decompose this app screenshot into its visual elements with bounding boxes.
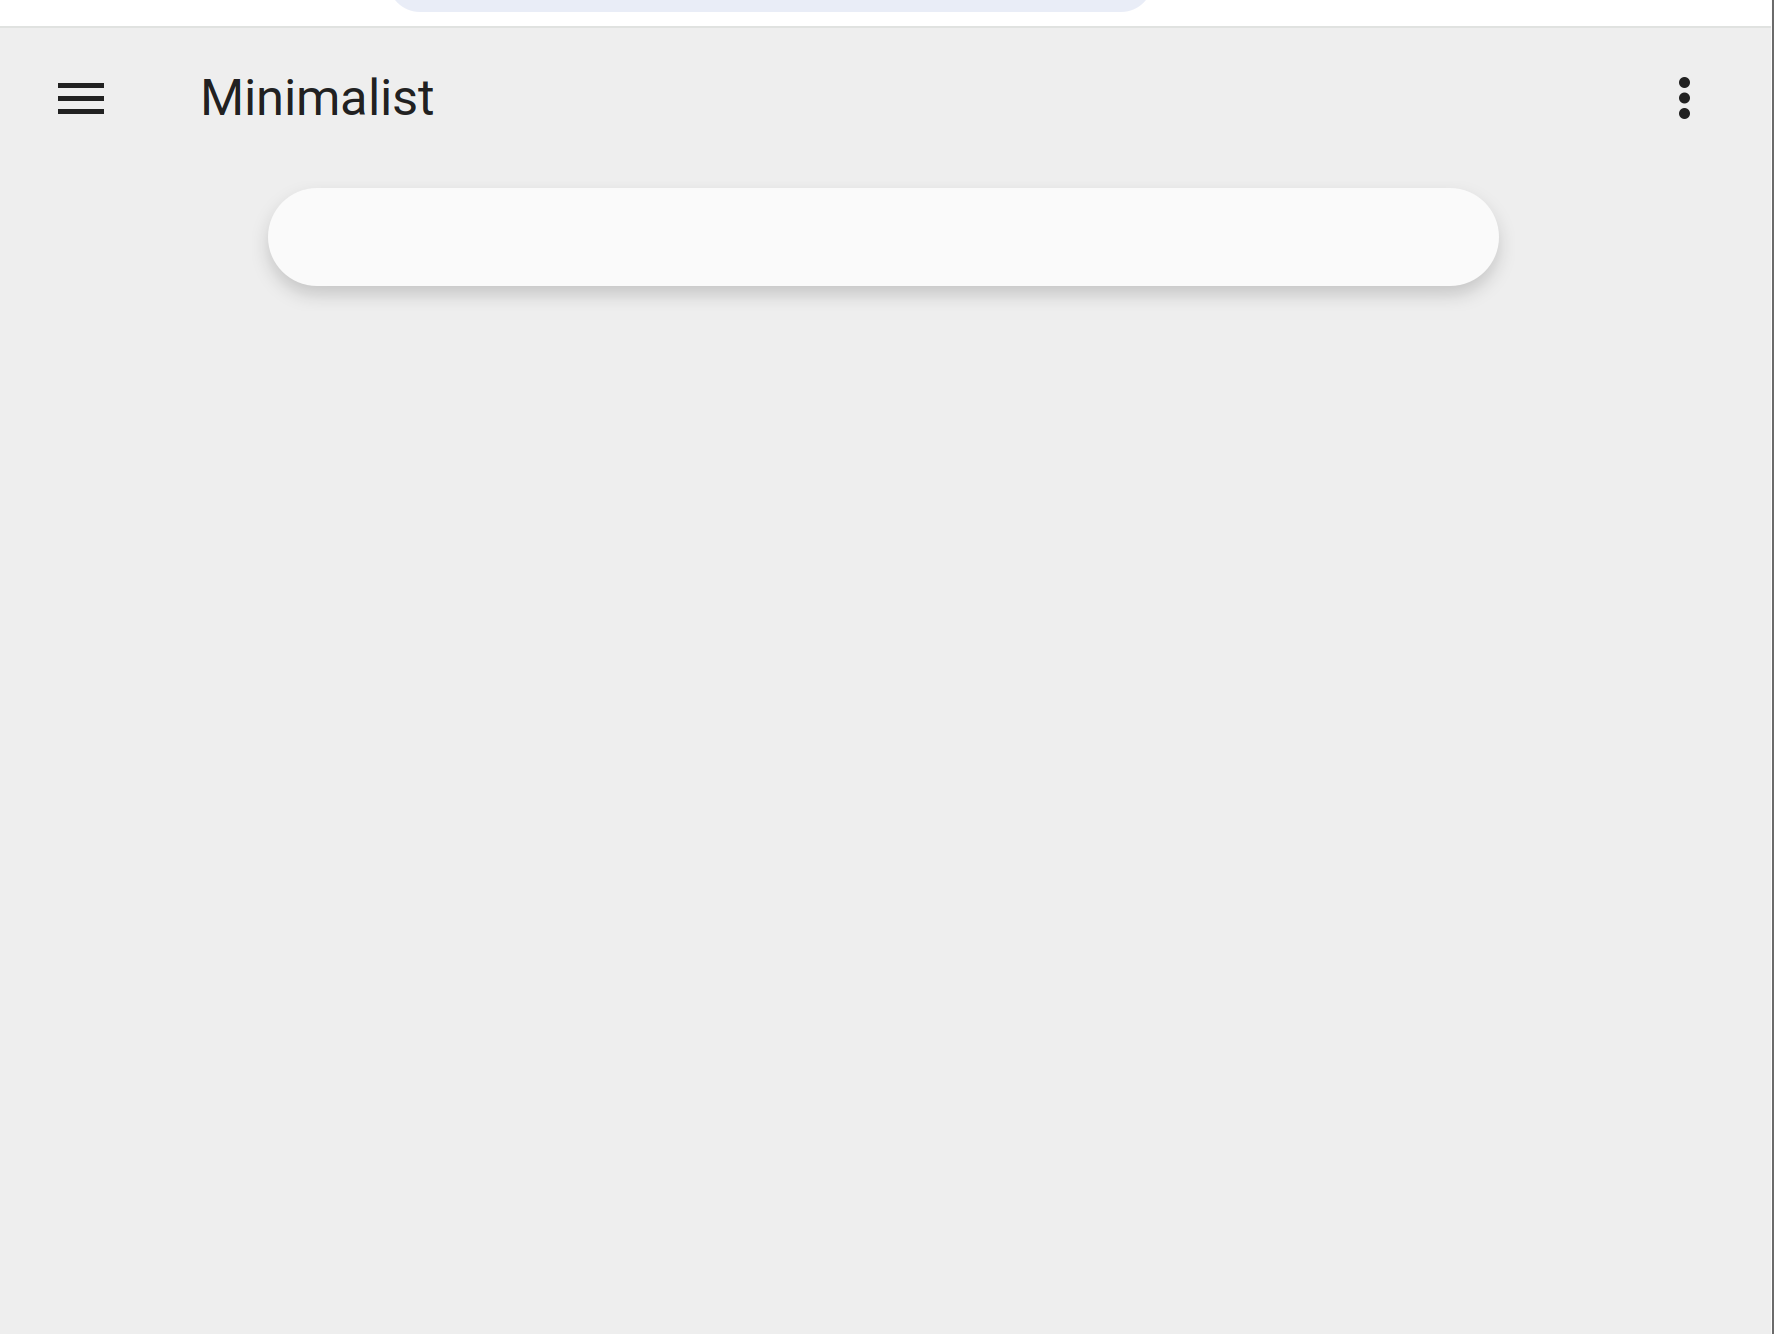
staticText: Minimalist [200, 68, 435, 127]
button[interactable]: Menu [28, 53, 134, 144]
button[interactable]: Minimalist [178, 42, 457, 153]
button[interactable]: Search [268, 188, 1499, 286]
button[interactable]: More options [1643, 51, 1726, 145]
